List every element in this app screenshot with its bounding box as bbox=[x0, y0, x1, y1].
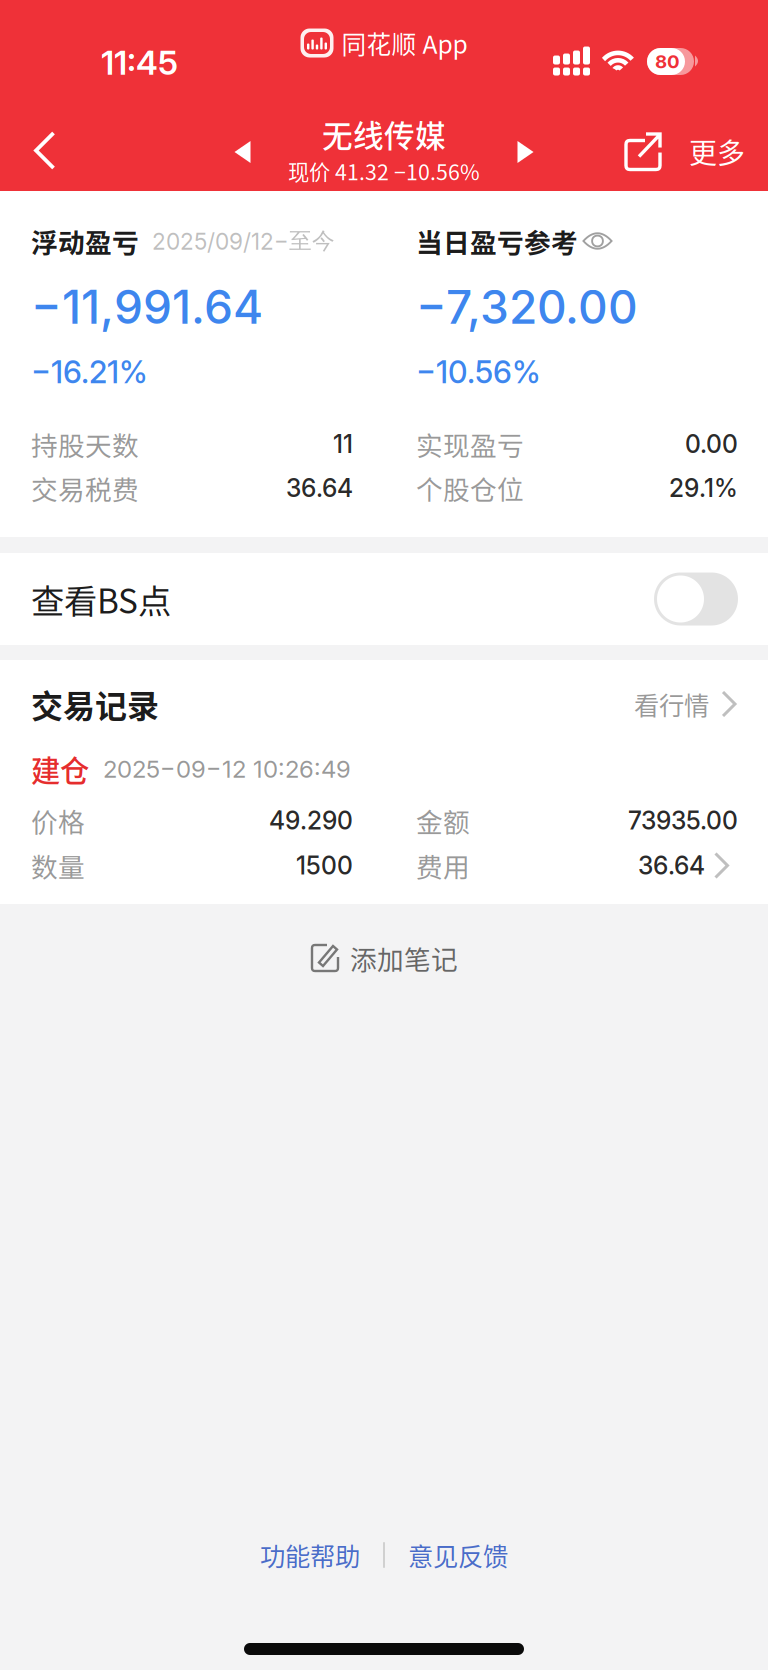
staticText: 无线传媒 bbox=[322, 112, 446, 156]
staticText: 添加笔记 bbox=[350, 939, 458, 977]
staticText: 2025−09−12 10:26:49 bbox=[103, 754, 351, 783]
staticText: −10.56% bbox=[416, 353, 541, 390]
staticText: 实现盈亏 bbox=[416, 425, 524, 463]
button[interactable]: Back bbox=[0, 103, 90, 198]
button[interactable]: 功能帮助 bbox=[260, 1527, 360, 1583]
staticText: 2025/09/12−至今 bbox=[152, 227, 335, 255]
staticText: 查看BS点 bbox=[31, 575, 171, 623]
staticText: 建仓 bbox=[31, 748, 89, 790]
staticText: 费用 bbox=[416, 846, 470, 885]
staticText: 11 bbox=[333, 429, 353, 459]
staticText: 现价 41.32 −10.56% bbox=[288, 156, 480, 186]
button[interactable]: 查看BS点 bbox=[0, 553, 768, 645]
staticText: −7,320.00 bbox=[416, 279, 638, 335]
staticText: 价格 bbox=[31, 801, 85, 840]
staticText: 73935.00 bbox=[628, 806, 738, 835]
staticText: 11:45 bbox=[101, 42, 178, 83]
staticText: 意见反馈 bbox=[408, 1537, 508, 1573]
staticText: 金额 bbox=[416, 801, 470, 840]
button[interactable]: 添加笔记 bbox=[310, 926, 458, 990]
staticText: 80 bbox=[655, 50, 680, 73]
staticText: 浮动盈亏 bbox=[31, 222, 139, 260]
staticText: 当日盈亏参考 bbox=[416, 222, 578, 260]
staticText: 看行情 bbox=[634, 686, 709, 722]
staticText: 个股仓位 bbox=[416, 469, 524, 507]
button[interactable]: 更多 bbox=[675, 115, 759, 187]
button[interactable]: 看行情 bbox=[634, 677, 737, 731]
staticText: 49.290 bbox=[269, 806, 353, 835]
button[interactable]: 意见反馈 bbox=[408, 1527, 508, 1583]
staticText: −16.21% bbox=[31, 353, 148, 390]
button[interactable]: 建仓 bbox=[31, 740, 737, 888]
staticText: 数量 bbox=[31, 846, 85, 885]
staticText: 同花顺 App bbox=[341, 25, 467, 61]
staticText: 36.64 bbox=[286, 473, 353, 503]
staticText: 持股天数 bbox=[31, 425, 139, 463]
staticText: 功能帮助 bbox=[260, 1537, 360, 1573]
button[interactable]: Next stock bbox=[498, 116, 552, 188]
button[interactable]: Previous stock bbox=[215, 116, 269, 188]
staticText: 更多 bbox=[689, 131, 745, 172]
staticText: 0.00 bbox=[685, 429, 738, 459]
staticText: 29.1% bbox=[669, 473, 738, 503]
button[interactable]: Share bbox=[611, 115, 675, 187]
staticText: 交易记录 bbox=[31, 681, 159, 727]
staticText: 交易税费 bbox=[31, 469, 139, 507]
staticText: 36.64 bbox=[638, 851, 705, 880]
staticText: −11,991.64 bbox=[31, 279, 263, 335]
staticText: 1500 bbox=[296, 851, 353, 880]
